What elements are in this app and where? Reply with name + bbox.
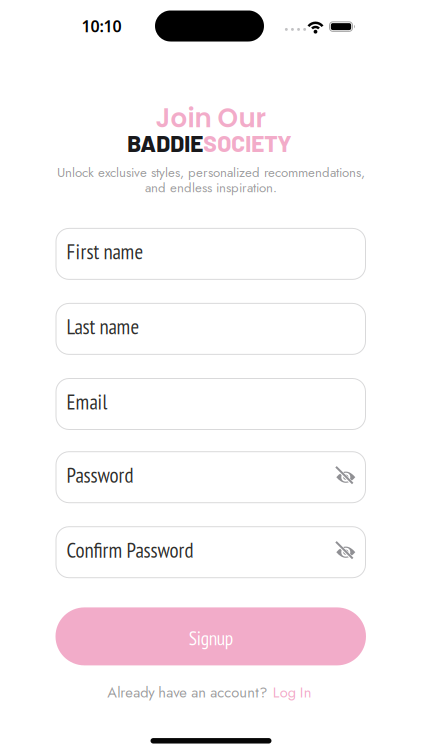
button[interactable]: Show password [331,537,361,567]
staticText: Confirm Password [66,536,193,563]
button[interactable]: Log In [273,682,312,703]
staticText: and endless inspiration. [145,178,277,197]
staticText: Join Our [156,100,267,136]
staticText: Unlock exclusive styles, personalized re… [57,163,365,182]
button[interactable]: Show password [331,462,361,492]
textField[interactable]: Last name [66,313,361,340]
textField[interactable]: First name [66,238,361,265]
textField[interactable]: Email [66,388,361,415]
staticText: SOCIETY [203,129,291,157]
staticText: Log In [273,682,312,703]
staticText: Password [66,461,133,488]
staticText: First name [66,238,143,265]
staticText: Email [66,388,107,415]
textField[interactable]: Password [66,461,331,488]
staticText: Already have an account? [107,682,267,703]
staticText: BADDIE [127,129,203,157]
button[interactable]: Signup [55,607,366,665]
staticText: 10:10 [81,15,121,37]
staticText: Last name [66,313,139,340]
staticText: Signup [189,626,233,651]
textField[interactable]: Confirm Password [66,536,331,563]
